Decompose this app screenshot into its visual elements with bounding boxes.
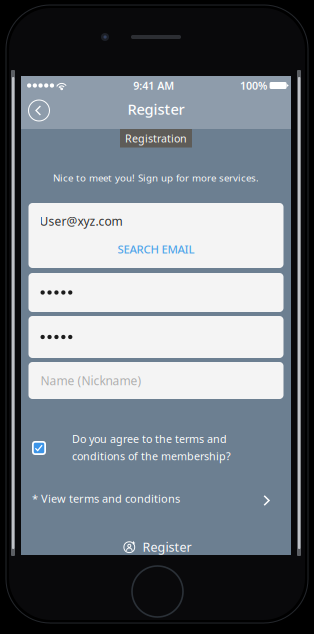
staticText: User@xyz.com	[39, 213, 122, 229]
staticText: Nice to meet you! Sign up for more servi…	[53, 171, 259, 184]
button[interactable]: SEARCH EMAIL	[28, 238, 283, 268]
staticText: 100%	[240, 78, 267, 93]
staticText: Name (Nickname)	[40, 372, 141, 389]
button[interactable]: Do you agree to the terms and	[21, 430, 291, 464]
staticText: Registration	[125, 131, 187, 145]
staticText: SEARCH EMAIL	[117, 241, 194, 257]
staticText: Register	[142, 538, 191, 556]
staticText: Register	[127, 99, 184, 119]
button[interactable]: * View terms and conditions	[21, 486, 291, 510]
staticText: conditions of the membership?	[72, 449, 231, 463]
button[interactable]: Register	[21, 534, 291, 560]
staticText: 9:41 AM	[133, 78, 174, 93]
button[interactable]: Back	[24, 95, 54, 125]
staticText: * View terms and conditions	[32, 491, 180, 506]
staticText: Do you agree to the terms and	[72, 431, 227, 446]
